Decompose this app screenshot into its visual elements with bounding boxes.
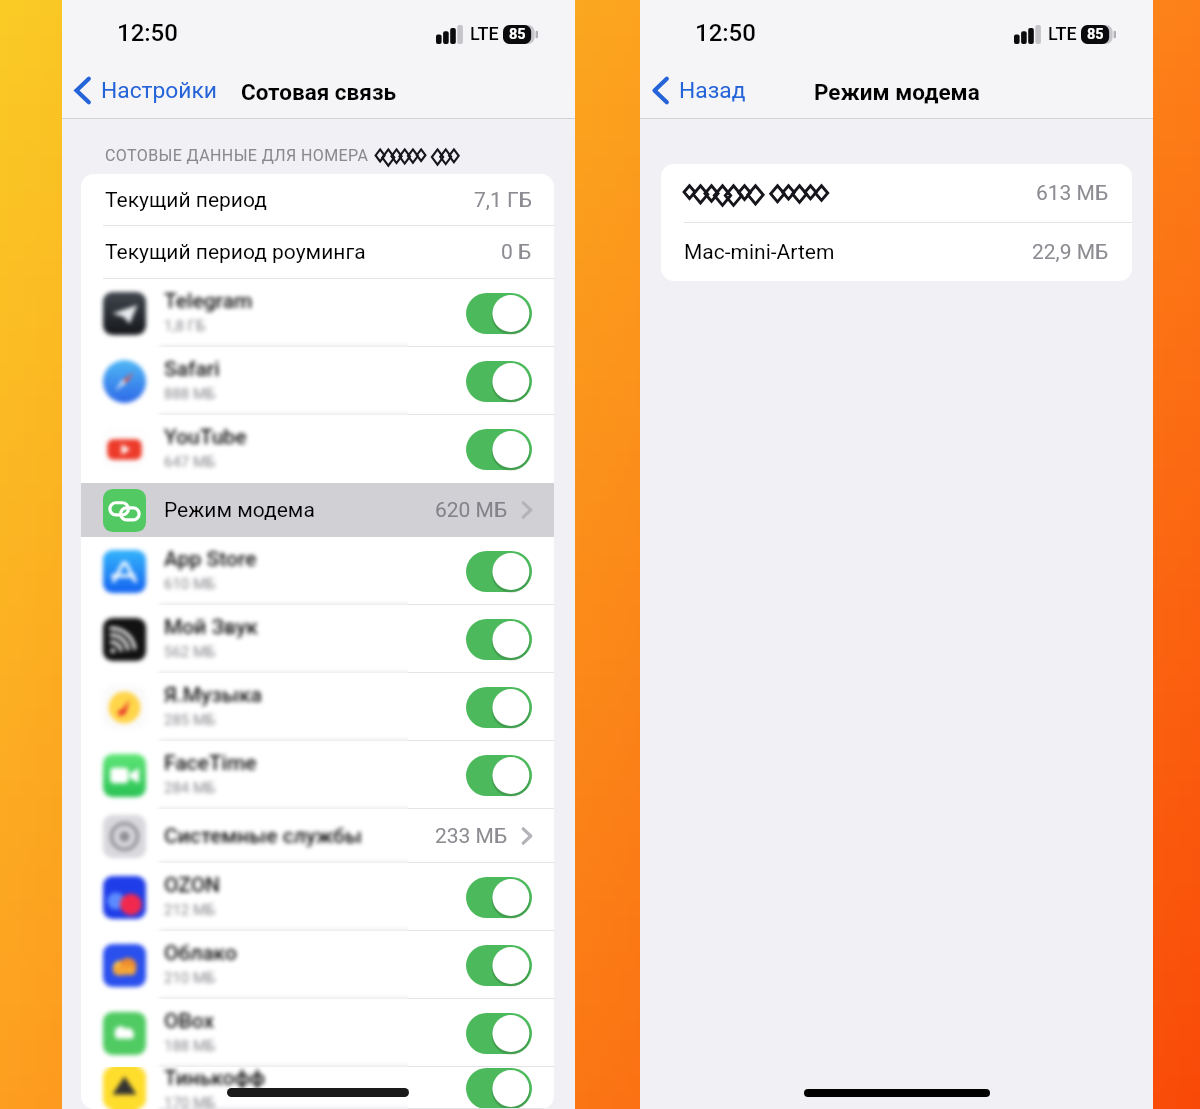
staticText: LTE (1048, 23, 1077, 44)
button[interactable]: Я.Музыка (81, 673, 554, 741)
button[interactable]: Назад (653, 62, 746, 119)
button[interactable]: OBox (81, 999, 554, 1067)
staticText: 210 МБ (164, 969, 216, 987)
staticText: Назад (679, 77, 746, 104)
staticText: 285 МБ (164, 711, 216, 729)
staticText: 7,1 ГБ (474, 188, 532, 213)
staticText: 85 (509, 26, 526, 43)
staticText: 647 МБ (164, 453, 216, 471)
staticText: Текущий период роуминга (105, 240, 366, 265)
staticText: Настройки (101, 77, 217, 104)
button[interactable]: Тинькофф (81, 1067, 554, 1109)
button[interactable]: Текущий период (81, 174, 554, 226)
staticText: Режим модема (814, 79, 980, 105)
button[interactable]: Включить сотовые данные (466, 755, 532, 796)
staticText: 562 МБ (164, 643, 216, 661)
button[interactable]: Включить сотовые данные (466, 877, 532, 918)
button[interactable]: FaceTime (81, 741, 554, 809)
button[interactable]: Режим модема (81, 483, 554, 537)
button[interactable]: Mac-mini-Artem (661, 223, 1132, 281)
staticText: Текущий период (105, 188, 267, 213)
staticText: Режим модема (164, 498, 315, 523)
staticText: 888 МБ (164, 385, 216, 403)
button[interactable]: Мой Звук (81, 605, 554, 673)
button[interactable]: Включить сотовые данные (466, 687, 532, 728)
button[interactable]: Системные службы (81, 809, 554, 863)
staticText: 85 (1087, 26, 1104, 43)
staticText: Safari (164, 357, 220, 382)
button[interactable]: Облако (81, 931, 554, 999)
staticText: 610 МБ (164, 575, 216, 593)
button[interactable]: Включить сотовые данные (466, 1013, 532, 1054)
button[interactable]: 613 МБ (661, 164, 1132, 222)
button[interactable]: Telegram (81, 279, 554, 347)
staticText: Я.Музыка (164, 683, 262, 708)
staticText: СОТОВЫЕ ДАННЫЕ ДЛЯ НОМЕРА (105, 146, 369, 165)
staticText: YouTube (164, 425, 247, 450)
button[interactable]: Включить сотовые данные (466, 361, 532, 402)
staticText: Telegram (164, 289, 253, 314)
staticText: Сотовая связь (241, 79, 397, 105)
button[interactable]: Включить сотовые данные (466, 429, 532, 470)
staticText: Системные службы (164, 824, 362, 849)
staticText: App Store (164, 547, 257, 572)
staticText: 12:50 (117, 19, 178, 47)
button[interactable]: App Store (81, 537, 554, 605)
button[interactable]: Настройки (75, 62, 217, 119)
staticText: OBox (164, 1009, 214, 1034)
button[interactable]: Включить сотовые данные (466, 619, 532, 660)
staticText: 1,8 ГБ (164, 317, 206, 335)
button[interactable]: Safari (81, 347, 554, 415)
staticText: Мой Звук (164, 615, 258, 640)
button[interactable]: Включить сотовые данные (466, 551, 532, 592)
staticText: Облако (164, 941, 237, 966)
staticText: 613 МБ (1036, 181, 1109, 206)
staticText: 233 МБ (435, 824, 508, 849)
staticText: 22,9 МБ (1032, 240, 1109, 265)
button[interactable]: Включить сотовые данные (466, 293, 532, 334)
staticText: Тинькофф (164, 1067, 266, 1091)
staticText: 284 МБ (164, 779, 216, 797)
button[interactable]: YouTube (81, 415, 554, 483)
staticText: OZON (164, 873, 220, 898)
button[interactable]: Включить сотовые данные (466, 945, 532, 986)
staticText: 188 МБ (164, 1037, 216, 1055)
button[interactable]: Включить сотовые данные (466, 1068, 532, 1109)
button[interactable]: Текущий период роуминга (81, 226, 554, 279)
staticText: 212 МБ (164, 901, 216, 919)
staticText: 170 МБ (164, 1094, 216, 1108)
staticText: LTE (470, 23, 499, 44)
staticText: 12:50 (695, 19, 756, 47)
staticText: 0 Б (501, 240, 532, 265)
staticText: Mac-mini-Artem (684, 240, 835, 265)
staticText: 620 МБ (435, 498, 508, 523)
staticText: FaceTime (164, 751, 257, 776)
button[interactable]: OZON (81, 863, 554, 931)
